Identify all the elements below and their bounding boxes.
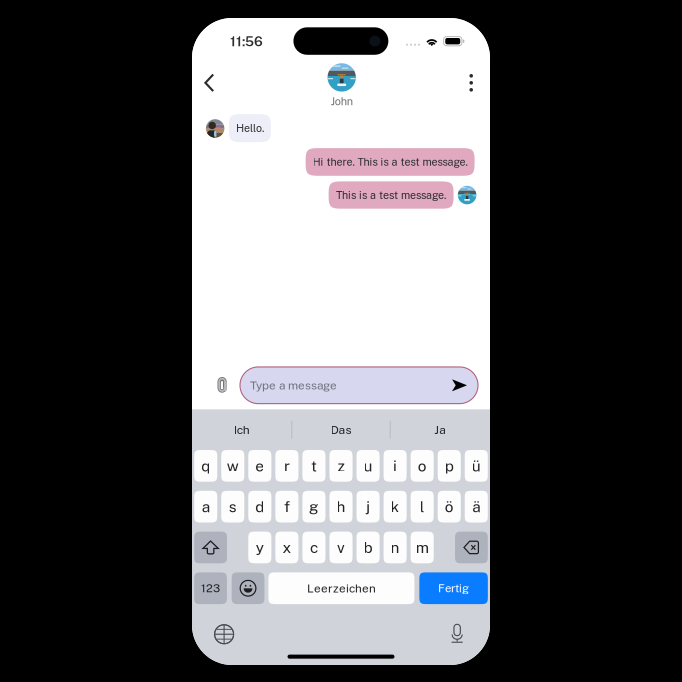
button[interactable]: John — [327, 58, 356, 108]
staticText: i — [393, 457, 397, 475]
button[interactable]: p — [438, 450, 461, 482]
staticText: n — [391, 538, 400, 556]
button[interactable]: ä — [465, 491, 488, 522]
staticText: d — [255, 498, 264, 516]
staticText: John — [331, 95, 353, 108]
staticText: x — [282, 538, 291, 556]
staticText: u — [364, 457, 373, 475]
staticText: ü — [472, 457, 481, 475]
staticText: Ich — [234, 423, 250, 437]
button[interactable]: r — [275, 450, 298, 482]
staticText: r — [284, 457, 290, 475]
button[interactable]: o — [411, 450, 434, 482]
staticText: g — [309, 498, 319, 516]
staticText: 123 — [201, 582, 220, 595]
staticText: j — [366, 498, 370, 516]
button[interactable]: m — [411, 532, 434, 563]
button[interactable]: q — [194, 450, 217, 482]
button[interactable]: More options — [452, 61, 490, 105]
button[interactable]: Delete — [455, 532, 488, 563]
staticText: s — [229, 498, 237, 516]
button[interactable]: Emoji keyboard — [232, 572, 264, 604]
button[interactable]: Attach file — [192, 367, 240, 404]
staticText: c — [310, 538, 318, 556]
staticText: Type a message — [250, 378, 337, 392]
button[interactable]: k — [384, 491, 407, 522]
staticText: v — [337, 538, 345, 556]
staticText: Ja — [434, 423, 446, 437]
staticText: z — [337, 457, 344, 475]
staticText: q — [201, 457, 210, 475]
button[interactable]: Switch keyboard — [192, 604, 244, 647]
button[interactable]: Dictate — [440, 604, 490, 647]
staticText: o — [418, 457, 427, 475]
button[interactable]: Ja — [391, 409, 490, 450]
button[interactable]: c — [302, 532, 325, 563]
button[interactable]: Leerzeichen — [268, 572, 414, 604]
staticText: f — [284, 498, 290, 516]
staticText: m — [416, 538, 429, 556]
button[interactable]: n — [384, 532, 407, 563]
staticText: p — [445, 457, 454, 475]
button[interactable]: l — [411, 491, 434, 522]
staticText: t — [311, 457, 317, 475]
button[interactable]: y — [248, 532, 271, 563]
button[interactable]: Shift — [194, 532, 227, 563]
staticText: l — [420, 498, 425, 516]
staticText: k — [391, 498, 400, 516]
staticText: Leerzeichen — [307, 581, 376, 595]
button[interactable]: i — [384, 450, 407, 482]
staticText: 11:56 — [230, 33, 263, 49]
button[interactable]: t — [302, 450, 325, 482]
staticText: ö — [445, 498, 454, 516]
button[interactable]: Back — [192, 60, 231, 105]
staticText: b — [364, 538, 373, 556]
button[interactable]: j — [356, 491, 380, 522]
button[interactable]: w — [221, 450, 244, 482]
staticText: ä — [472, 498, 480, 516]
staticText: Das — [330, 423, 351, 437]
staticText: w — [227, 457, 239, 475]
button[interactable]: z — [329, 450, 353, 482]
button[interactable]: d — [248, 491, 271, 522]
button[interactable]: h — [329, 491, 353, 522]
button[interactable]: g — [302, 491, 325, 522]
button[interactable]: b — [356, 532, 380, 563]
staticText: Fertig — [438, 582, 469, 595]
button[interactable]: Das — [292, 409, 390, 450]
button[interactable]: e — [248, 450, 271, 482]
button[interactable]: ö — [438, 491, 461, 522]
staticText: e — [255, 457, 264, 475]
button[interactable]: Ich — [192, 409, 291, 450]
button[interactable]: s — [221, 491, 244, 522]
button[interactable]: a — [194, 491, 217, 522]
staticText: a — [202, 498, 210, 516]
staticText: Hi there. This is a test message. — [313, 156, 468, 168]
button[interactable]: v — [329, 532, 353, 563]
staticText: This is a test message. — [336, 189, 446, 201]
button[interactable]: x — [275, 532, 298, 563]
staticText: h — [336, 498, 345, 516]
button[interactable]: u — [356, 450, 380, 482]
button[interactable]: Send — [443, 368, 467, 403]
button[interactable]: ü — [465, 450, 488, 482]
button[interactable]: Fertig — [419, 572, 488, 604]
button[interactable]: f — [275, 491, 298, 522]
button[interactable]: 123 — [194, 572, 227, 604]
staticText: y — [256, 538, 264, 556]
staticText: Hello. — [236, 122, 264, 134]
